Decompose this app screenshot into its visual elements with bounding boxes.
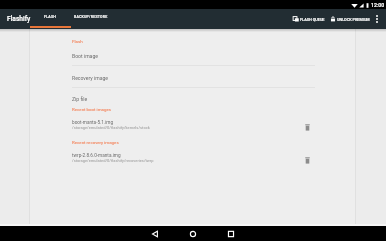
staticText: Boot image bbox=[72, 53, 98, 59]
staticText: 12:00 bbox=[371, 2, 385, 8]
button[interactable]: FLASH bbox=[30, 9, 71, 29]
button[interactable]: Recent apps bbox=[212, 226, 250, 241]
button[interactable]: boot-manta-5.1.img bbox=[72, 121, 313, 134]
staticText: boot-manta-5.1.img bbox=[72, 120, 114, 126]
staticText: UNLOCK PREMIUM bbox=[337, 17, 370, 21]
button[interactable]: Delete bbox=[301, 121, 313, 133]
button[interactable]: Recovery image bbox=[72, 66, 315, 88]
staticText: /storage/emulated/0/flashify/kernels/sto… bbox=[72, 125, 150, 130]
staticText: Recovery image bbox=[72, 75, 108, 81]
staticText: FLASH bbox=[44, 15, 57, 19]
staticText: Recent recovery images bbox=[72, 140, 119, 145]
staticText: BACKUP/RESTORE bbox=[74, 15, 108, 19]
staticText: Flashify bbox=[7, 15, 31, 23]
staticText: Recent boot images bbox=[72, 107, 111, 112]
button[interactable]: More options bbox=[369, 9, 384, 29]
button[interactable]: Home bbox=[174, 226, 212, 241]
staticText: Zip file bbox=[72, 96, 88, 102]
button[interactable]: FLASH QUEUE bbox=[290, 9, 328, 29]
staticText: FLASH QUEUE bbox=[300, 17, 325, 21]
button[interactable]: BACKUP/RESTORE bbox=[71, 9, 111, 29]
button[interactable]: Back bbox=[136, 226, 174, 241]
button[interactable]: Delete bbox=[301, 154, 313, 166]
button[interactable]: UNLOCK PREMIUM bbox=[327, 9, 373, 29]
staticText: twrp-2.8.6.0-manta.img bbox=[72, 153, 121, 159]
staticText: Flash bbox=[72, 39, 83, 44]
staticText: /storage/emulated/0/flashify/recoveries/… bbox=[72, 158, 154, 163]
button[interactable]: Zip file bbox=[72, 87, 315, 109]
button[interactable]: twrp-2.8.6.0-manta.img bbox=[72, 154, 313, 167]
button[interactable]: Boot image bbox=[72, 44, 315, 66]
